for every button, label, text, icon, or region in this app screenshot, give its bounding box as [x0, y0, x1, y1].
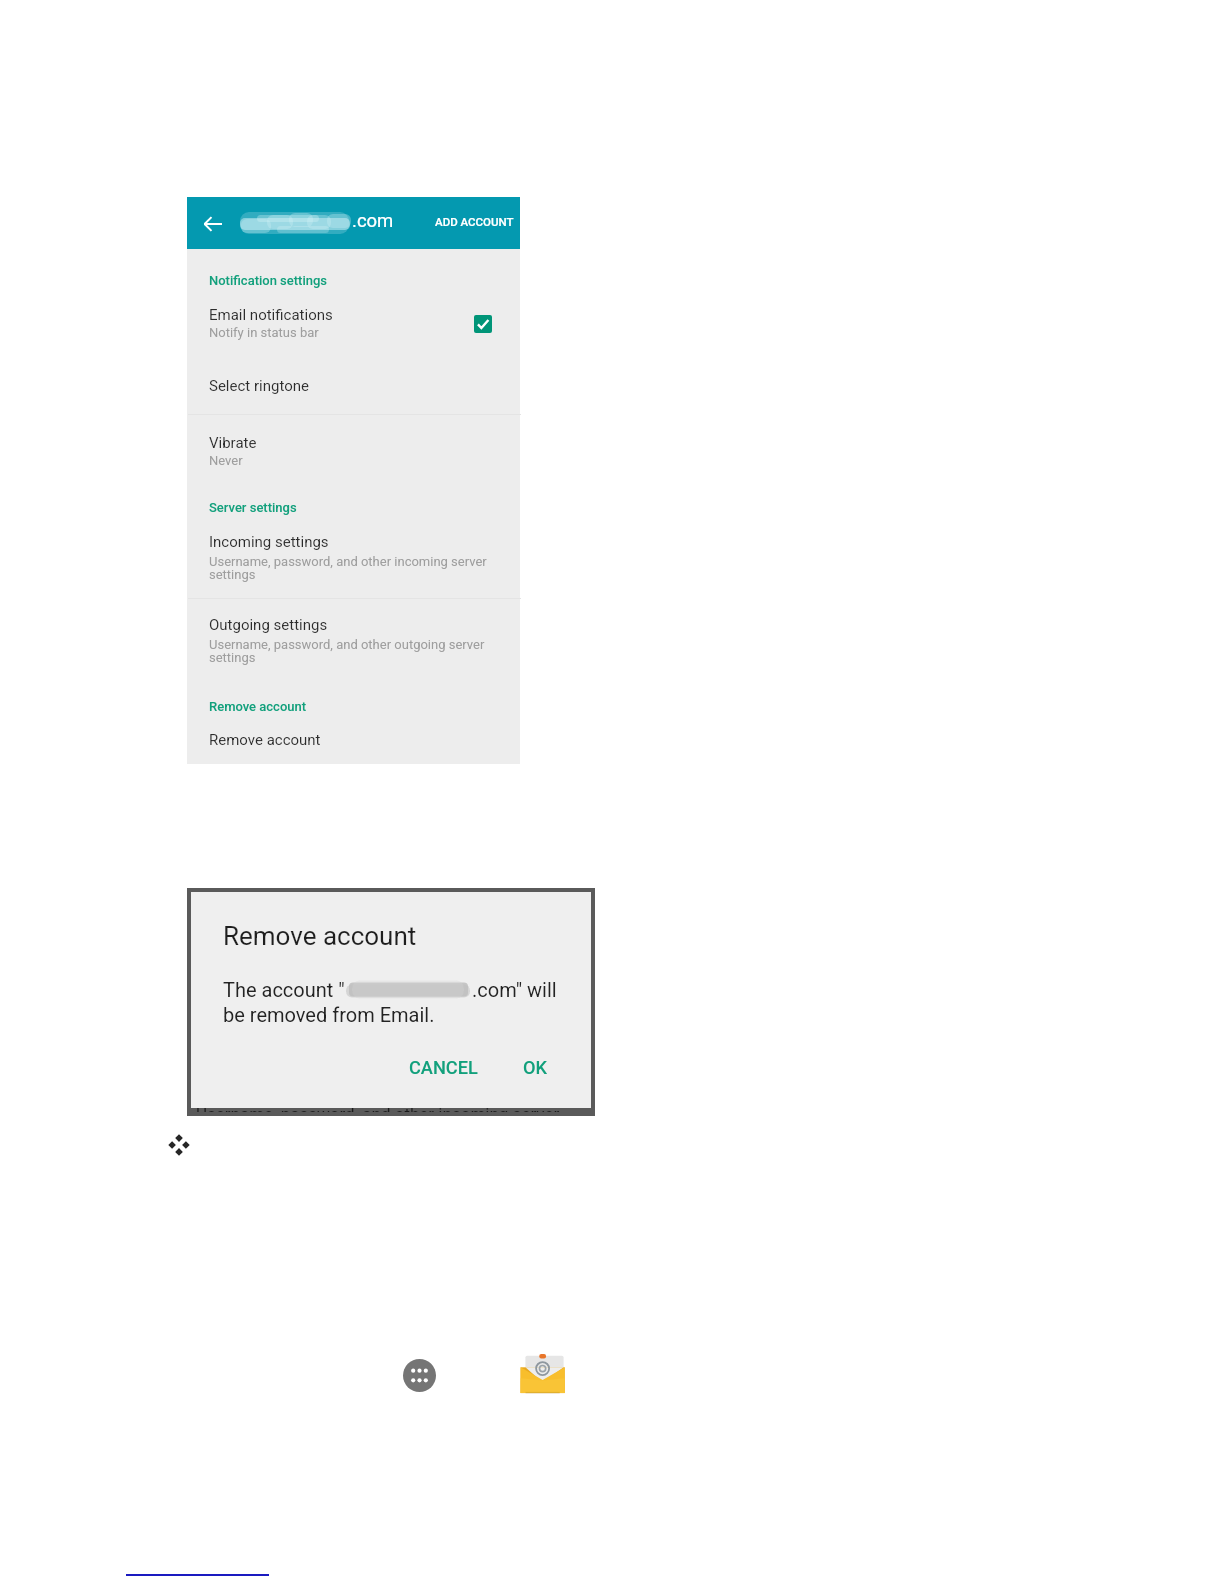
button[interactable]: Apps	[403, 1359, 436, 1392]
button[interactable]: Email	[518, 1350, 568, 1396]
staticText: Remove account	[223, 921, 417, 951]
staticText: Select ringtone	[209, 377, 309, 395]
staticText: Remove account	[209, 731, 321, 749]
staticText: Email notifications	[209, 306, 333, 324]
staticText: Vibrate	[209, 434, 257, 452]
staticText: ADD ACCOUNT	[435, 215, 514, 228]
button[interactable]: CANCEL	[399, 1049, 488, 1086]
button[interactable]: ADD ACCOUNT	[425, 208, 524, 235]
staticText: OK	[523, 1057, 548, 1078]
staticText: Username, password, and other incoming s…	[209, 554, 489, 582]
button[interactable]: Back	[198, 209, 228, 239]
staticText: Username, password, and other incoming s…	[196, 1108, 560, 1112]
button[interactable]: Email notifications enabled	[474, 315, 492, 333]
staticText: Server settings	[209, 500, 297, 515]
staticText: Notify in status bar	[209, 325, 319, 340]
button[interactable]: Vibrate	[187, 431, 520, 467]
staticText: Remove account	[209, 699, 307, 714]
staticText: Incoming settings	[209, 533, 329, 551]
button[interactable]: Remove account	[187, 728, 520, 758]
staticText: .com	[352, 210, 394, 232]
staticText: Outgoing settings	[209, 616, 328, 634]
staticText: The account "	[223, 978, 345, 1001]
staticText: be removed from Email.	[223, 1003, 435, 1026]
staticText: Username, password, and other outgoing s…	[209, 637, 489, 665]
staticText: Notification settings	[209, 273, 328, 288]
button[interactable]: Email notifications	[187, 306, 520, 350]
staticText: Never	[209, 453, 243, 468]
button[interactable]: Outgoing settings	[187, 613, 520, 669]
button[interactable]: Select ringtone	[187, 374, 520, 402]
staticText: .com" will	[472, 978, 557, 1001]
staticText: CANCEL	[409, 1057, 478, 1078]
button[interactable]: OK	[513, 1049, 558, 1086]
button[interactable]: Incoming settings	[187, 530, 520, 586]
